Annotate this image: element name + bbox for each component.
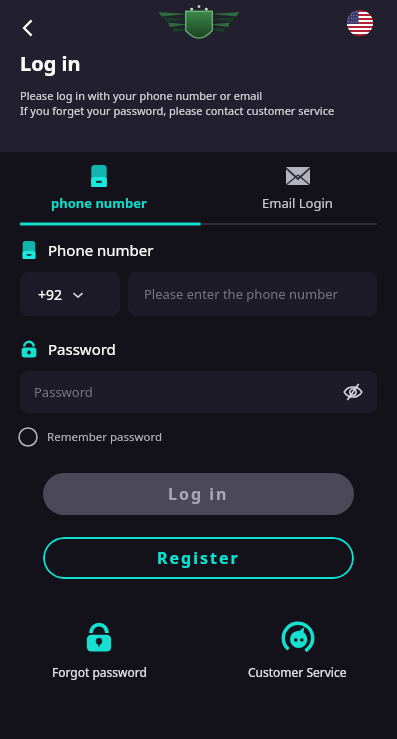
button[interactable]: Register xyxy=(43,537,354,579)
button[interactable]: Password xyxy=(20,371,377,413)
staticText: Log in xyxy=(20,50,81,77)
button[interactable]: Email Login xyxy=(198,152,397,230)
button[interactable]: Please enter the phone number xyxy=(128,272,377,316)
staticText: +92 xyxy=(38,285,63,304)
staticText: Please enter the phone number xyxy=(144,285,338,303)
staticText: Log in xyxy=(168,483,229,505)
button[interactable]: Customer Service xyxy=(198,622,397,680)
staticText: Password xyxy=(48,339,116,359)
staticText: Email Login xyxy=(262,194,333,212)
staticText: Password xyxy=(34,383,93,401)
staticText: Register xyxy=(157,547,240,569)
staticText: Remember password xyxy=(47,429,163,445)
button[interactable]: Show password xyxy=(339,378,367,406)
button[interactable]: Log in xyxy=(43,473,354,515)
button[interactable]: Remember password xyxy=(18,427,163,447)
staticText: phone number xyxy=(51,194,147,212)
button[interactable]: Language xyxy=(347,10,373,36)
staticText: Please log in with your phone number or … xyxy=(20,88,263,103)
button[interactable]: Forgot password xyxy=(0,622,198,680)
button[interactable]: Back xyxy=(8,8,48,48)
staticText: Customer Service xyxy=(248,664,347,680)
staticText: If you forget your password, please cont… xyxy=(20,103,335,118)
button[interactable]: +92 xyxy=(20,272,120,316)
staticText: Forgot password xyxy=(52,664,147,680)
staticText: Phone number xyxy=(48,240,154,260)
button[interactable]: phone number xyxy=(0,152,198,230)
